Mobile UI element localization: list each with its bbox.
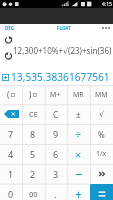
staticText: 7 <box>8 128 14 140</box>
button[interactable]: 4 <box>0 144 22 164</box>
staticText: 4 <box>8 148 14 160</box>
staticText: % <box>98 129 105 140</box>
staticText: 4:15 <box>102 1 112 8</box>
staticText: 3 <box>53 168 59 180</box>
button[interactable]: Redo <box>3 34 13 44</box>
button[interactable]: MR <box>67 85 90 104</box>
button[interactable]: 5 <box>22 144 44 164</box>
staticText: DEG <box>5 25 15 31</box>
staticText: × <box>75 147 82 162</box>
button[interactable]: 3 <box>44 164 67 184</box>
button[interactable]: C <box>44 104 67 124</box>
staticText: − <box>75 165 83 183</box>
staticText: ÷ <box>75 127 82 142</box>
button[interactable]: ) <box>22 85 44 104</box>
button[interactable]: + <box>67 184 90 200</box>
staticText: 1 <box>8 168 14 180</box>
button[interactable]: 0 <box>0 184 22 200</box>
staticText: FLOAT <box>57 25 71 31</box>
staticText: + <box>75 186 82 200</box>
staticText: ± <box>76 109 81 120</box>
button[interactable]: 1/x <box>90 144 113 164</box>
staticText: 00 <box>29 189 38 199</box>
button[interactable]: Undo <box>3 50 13 60</box>
button[interactable]: MM <box>90 85 113 104</box>
button[interactable]: % <box>90 124 113 144</box>
button[interactable]: DEG <box>5 25 15 31</box>
staticText: 8 <box>30 128 36 140</box>
button[interactable]: 1 <box>0 164 22 184</box>
button[interactable]: 8 <box>22 124 44 144</box>
staticText: 6 <box>53 148 59 160</box>
staticText: . <box>54 188 57 200</box>
staticText: √ <box>99 110 105 119</box>
button[interactable]: ( <box>0 85 22 104</box>
staticText: 5 <box>30 148 36 160</box>
other: Equals <box>97 189 107 199</box>
button[interactable]: Backspace <box>0 104 22 124</box>
staticText: 2 <box>30 168 36 180</box>
staticText: ( <box>7 89 10 100</box>
other: Backspace <box>4 110 19 118</box>
other: More functions <box>97 169 107 179</box>
button[interactable]: More options <box>101 24 111 34</box>
button[interactable]: More functions <box>90 164 113 184</box>
staticText: M+ <box>50 90 61 100</box>
staticText: C <box>53 109 59 120</box>
staticText: CE <box>29 109 38 119</box>
button[interactable]: 7 <box>0 124 22 144</box>
staticText: 12,300+10%+√(23)+sin(36) <box>13 45 112 56</box>
button[interactable]: ÷ <box>67 124 90 144</box>
staticText: 1/x <box>96 149 107 159</box>
staticText: 13,535.38361677561 <box>11 70 110 84</box>
button[interactable]: . <box>44 184 67 200</box>
staticText: ) <box>29 89 32 100</box>
staticText: 0 <box>8 188 14 200</box>
button[interactable]: Equals <box>90 184 113 200</box>
button[interactable]: CE <box>22 104 44 124</box>
button[interactable]: Add result to memory <box>2 74 9 81</box>
button[interactable]: ± <box>67 104 90 124</box>
staticText: 9 <box>53 128 59 140</box>
button[interactable]: 9 <box>44 124 67 144</box>
button[interactable]: 6 <box>44 144 67 164</box>
button[interactable]: M+ <box>44 85 67 104</box>
staticText: MR <box>73 90 84 100</box>
button[interactable]: √ <box>90 104 113 124</box>
staticText: MM <box>95 90 108 100</box>
button[interactable]: 00 <box>22 184 44 200</box>
button[interactable]: × <box>67 144 90 164</box>
button[interactable]: 2 <box>22 164 44 184</box>
button[interactable]: − <box>67 164 90 184</box>
button[interactable]: FLOAT <box>57 25 71 31</box>
